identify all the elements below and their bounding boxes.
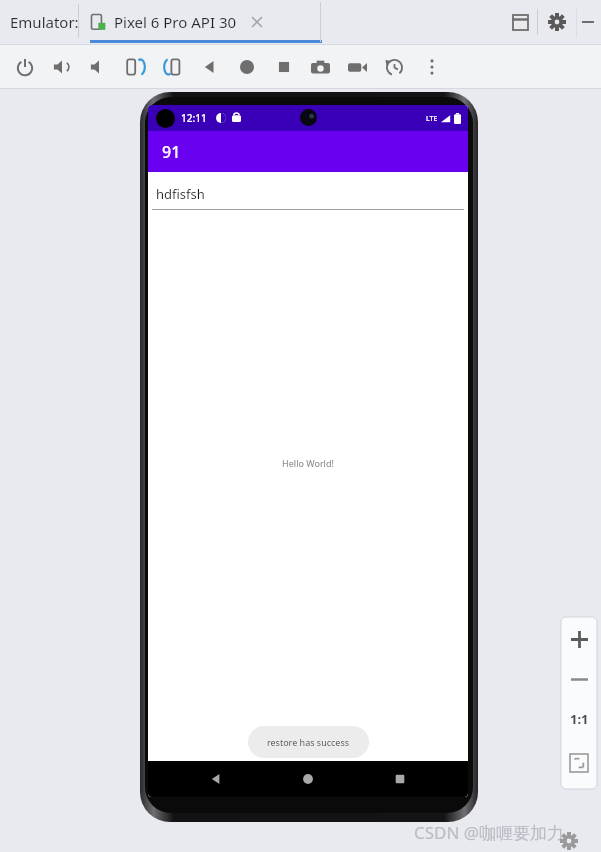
staticText: Hello World! [282,457,334,469]
staticText: CSDN @咖喱要加力 [414,821,565,844]
staticText: 12:11 [181,111,207,125]
button[interactable]: Rotate right [154,47,191,87]
button[interactable]: Volume down [80,47,117,87]
staticText: hdfisfsh [156,185,205,203]
staticText: LTE [426,114,438,124]
button[interactable]: Back [191,47,228,87]
button[interactable]: Pixel 6 Pro API 30 [90,0,267,44]
button[interactable]: Fit to screen [561,741,597,785]
button[interactable]: History [376,47,413,87]
button[interactable]: restore has success [248,726,369,758]
button[interactable]: Zoom out [561,661,597,697]
staticText: Pixel 6 Pro API 30 [114,12,237,32]
button[interactable]: Back [192,761,240,797]
button[interactable]: Actual size [561,697,597,741]
button[interactable]: Window [503,5,537,39]
button[interactable]: Close tab [247,12,267,32]
button[interactable]: hdfisfsh [152,185,464,210]
button[interactable]: Home [284,761,332,797]
button[interactable]: 91 [148,131,468,172]
staticText: Emulator: [10,12,79,32]
staticText: restore has success [267,736,350,748]
button[interactable]: Rotate left [117,47,154,87]
button[interactable]: Zoom in [561,617,597,661]
button[interactable]: Overview [265,47,302,87]
button[interactable]: Home [228,47,265,87]
button[interactable]: Record screen [339,47,376,87]
staticText: 91 [162,141,181,163]
button[interactable]: Settings [538,3,576,41]
button[interactable]: Volume up [43,47,80,87]
button[interactable]: Power [6,47,43,87]
button[interactable]: More [413,47,450,87]
staticText: 1:1 [570,710,589,728]
button[interactable]: Screenshot [302,47,339,87]
button[interactable]: Minimize [577,11,599,33]
button[interactable]: Recents [376,761,424,797]
